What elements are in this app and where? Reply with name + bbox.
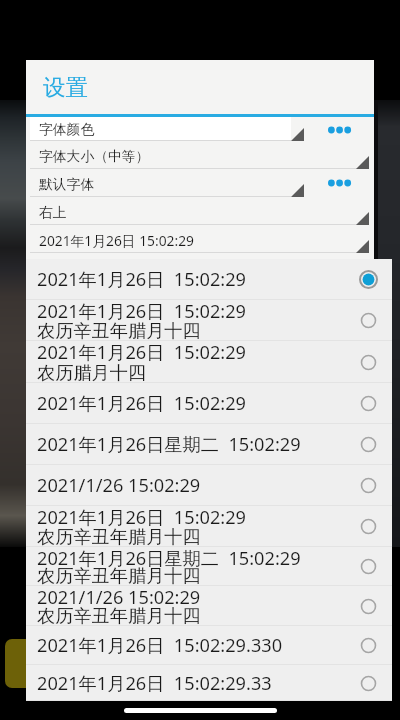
- button[interactable]: 2021/1/26 15:02:29: [26, 465, 392, 506]
- button[interactable]: 2021年1月26日星期二 15:02:29: [26, 547, 392, 586]
- button[interactable]: 右上: [26, 198, 374, 226]
- staticText: 农历腊月十四: [37, 361, 147, 384]
- staticText: 2021/1/26 15:02:29: [37, 473, 201, 498]
- button[interactable]: 字体大小（中等）: [26, 142, 374, 170]
- button[interactable]: 2021年1月26日 15:02:29: [26, 300, 392, 341]
- staticText: 字体大小（中等）: [39, 148, 150, 165]
- staticText: 2021年1月26日 15:02:29.330: [37, 633, 283, 658]
- staticText: 2021年1月26日 15:02:29: [37, 340, 247, 365]
- button[interactable]: Floating action: [5, 639, 47, 688]
- staticText: 2021年1月26日 15:02:29: [37, 267, 247, 292]
- button[interactable]: 2021年1月26日 15:02:29: [26, 226, 374, 254]
- staticText: 2021年1月26日星期二 15:02:29: [37, 432, 301, 457]
- staticText: 2021年1月26日 15:02:29.33: [37, 671, 272, 696]
- button[interactable]: 2021年1月26日 15:02:29.330: [26, 626, 392, 665]
- staticText: 默认字体: [39, 176, 95, 193]
- button[interactable]: 2021年1月26日 15:02:29: [26, 259, 392, 300]
- staticText: 右上: [39, 204, 67, 221]
- button[interactable]: 2021年1月26日 15:02:29.33: [26, 665, 392, 701]
- button[interactable]: 默认字体: [26, 170, 374, 198]
- staticText: 农历辛丑年腊月十四: [37, 604, 201, 627]
- staticText: 2021年1月26日 15:02:29: [39, 231, 194, 250]
- staticText: 设置: [43, 73, 88, 101]
- button[interactable]: 2021年1月26日星期二 15:02:29: [26, 424, 392, 465]
- staticText: 农历辛丑年腊月十四: [37, 525, 201, 548]
- staticText: 2021年1月26日 15:02:29: [37, 391, 247, 416]
- button[interactable]: 2021/1/26 15:02:29: [26, 586, 392, 626]
- staticText: 2021年1月26日 15:02:29: [37, 299, 247, 324]
- staticText: 字体颜色: [39, 121, 95, 138]
- staticText: 2021/1/26 15:02:29: [37, 585, 201, 610]
- staticText: 2021年1月26日星期二 15:02:29: [37, 546, 301, 571]
- staticText: 2021年1月26日 15:02:29: [37, 505, 247, 530]
- button[interactable]: 2021年1月26日 15:02:29: [26, 341, 392, 383]
- button[interactable]: 2021年1月26日 15:02:29: [26, 506, 392, 547]
- staticText: 农历辛丑年腊月十四: [37, 319, 201, 342]
- button[interactable]: 2021年1月26日 15:02:29: [26, 383, 392, 424]
- button[interactable]: 字体颜色: [26, 117, 374, 142]
- staticText: 农历辛丑年腊月十四: [37, 564, 201, 587]
